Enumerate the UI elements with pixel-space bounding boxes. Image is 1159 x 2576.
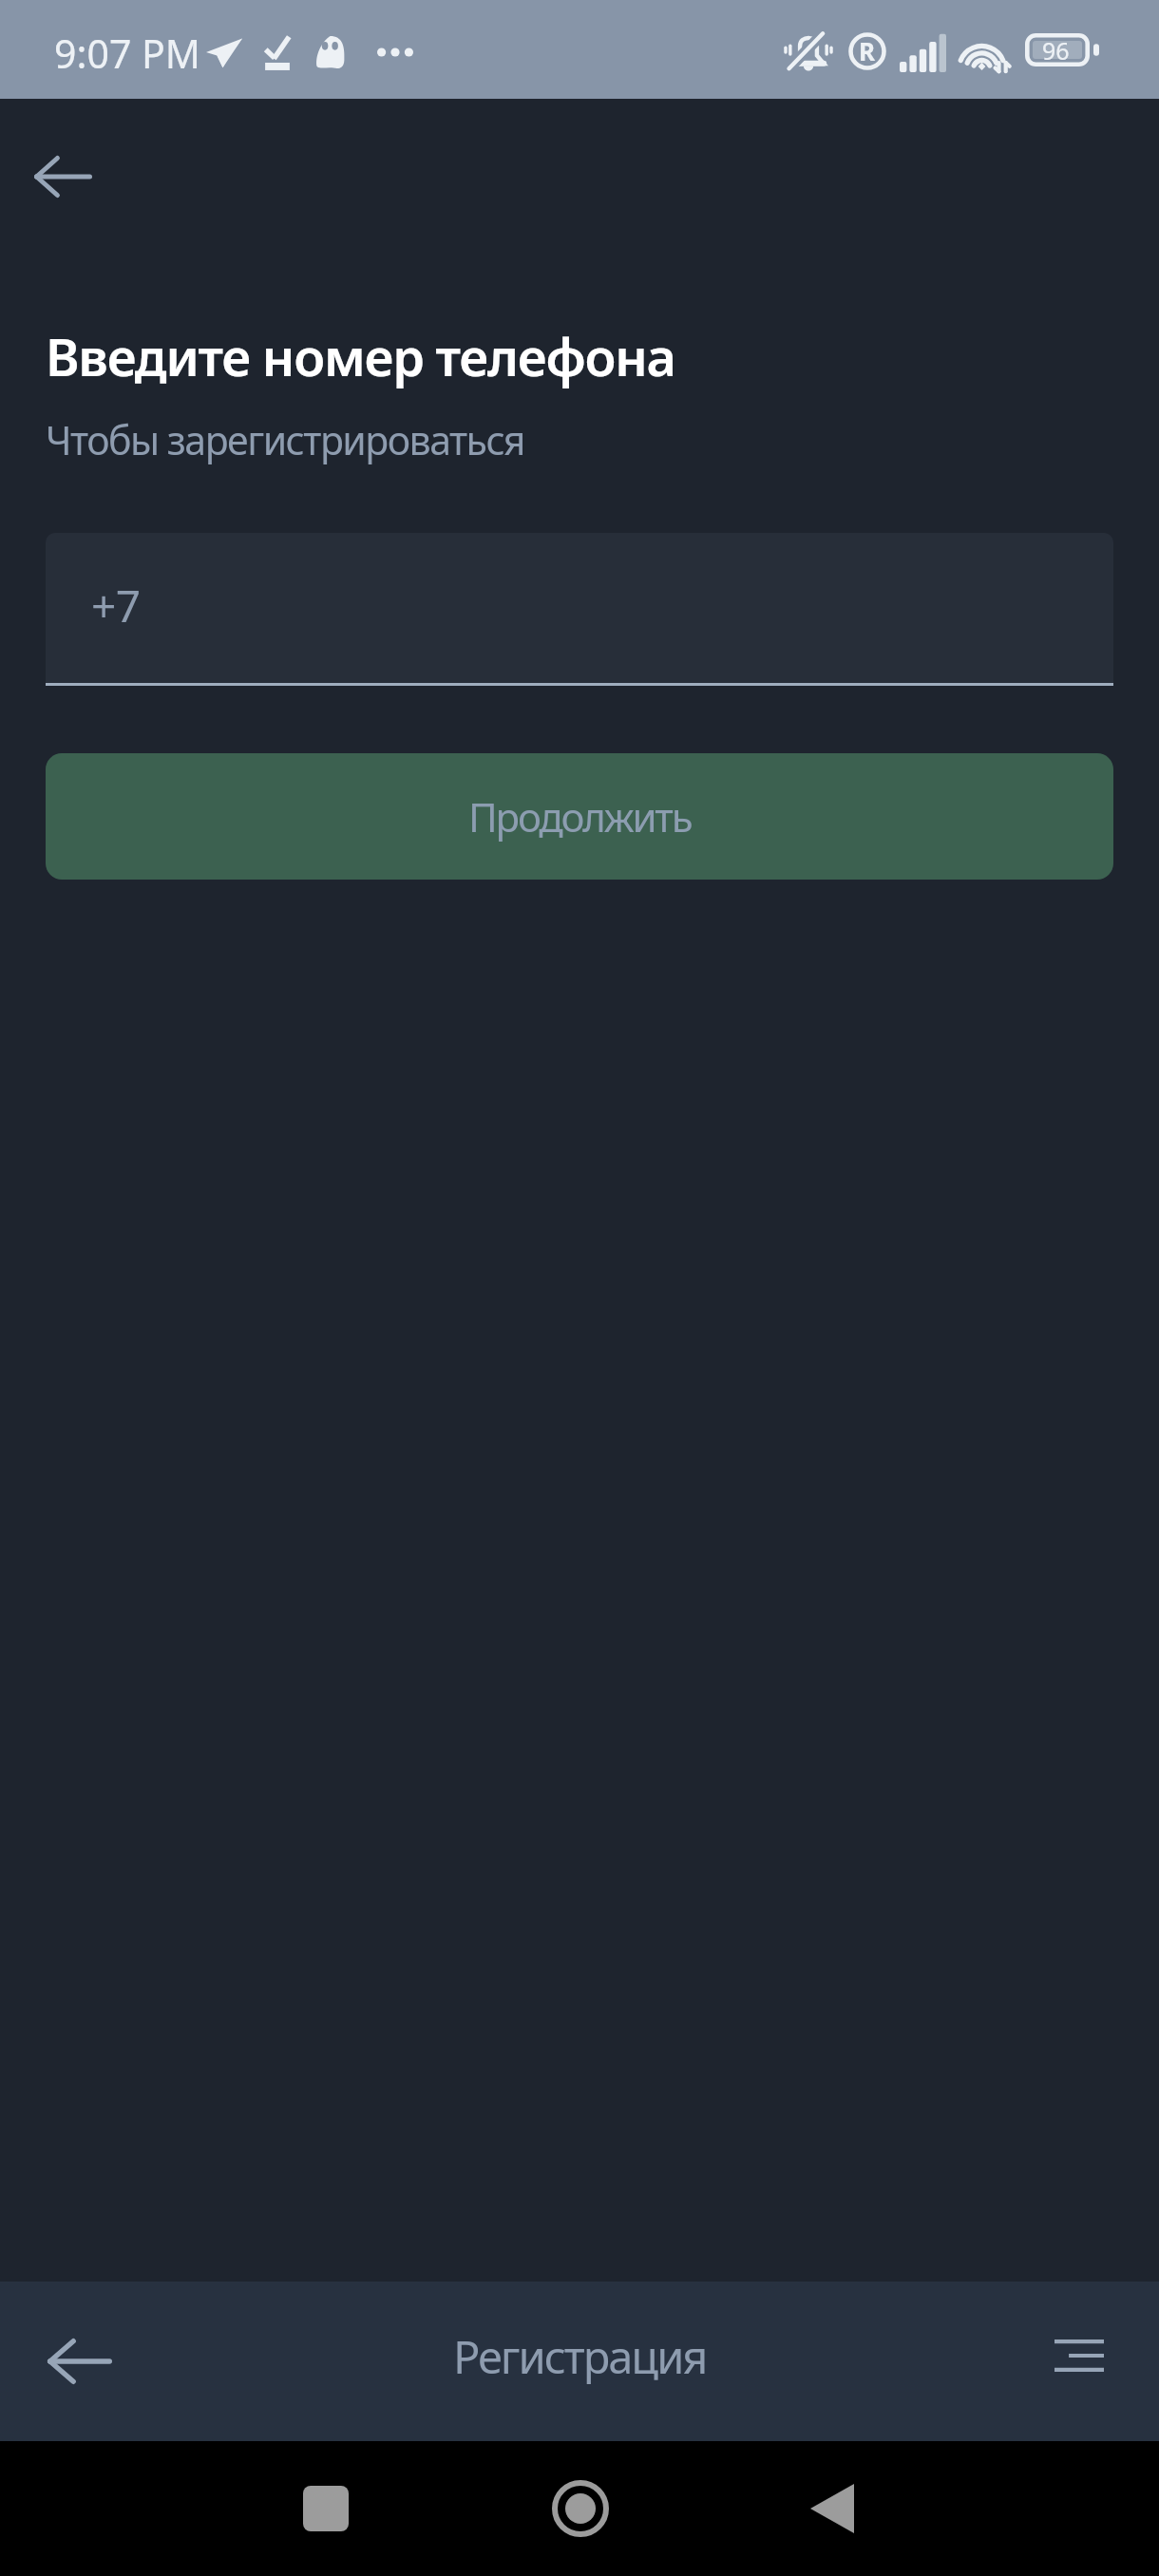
staticText: 9:07 PM	[54, 27, 200, 80]
button[interactable]: Menu	[1026, 2309, 1130, 2414]
staticText: R	[859, 34, 876, 67]
staticText: +7	[91, 576, 141, 635]
button[interactable]: +7	[46, 533, 1113, 683]
button[interactable]: Home	[533, 2461, 628, 2556]
button[interactable]: Back	[19, 133, 106, 220]
staticText: 96	[1042, 34, 1070, 66]
button[interactable]: Продолжить	[46, 753, 1113, 880]
staticText: Введите номер телефона	[46, 321, 675, 391]
staticText: Чтобы зарегистрироваться	[46, 413, 524, 466]
staticText: Продолжить	[468, 789, 692, 843]
button[interactable]: Back	[785, 2461, 880, 2556]
button[interactable]: Back	[23, 2304, 137, 2418]
button[interactable]: Recents	[278, 2461, 373, 2556]
staticText: Регистрация	[453, 2326, 707, 2387]
